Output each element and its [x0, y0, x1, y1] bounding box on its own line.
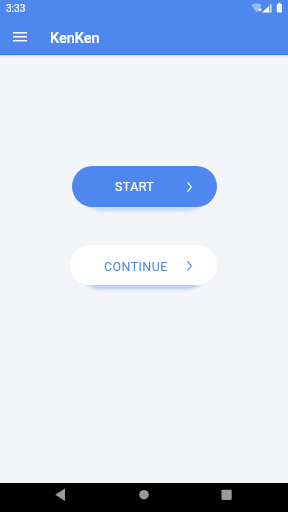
button[interactable]: Open navigation menu	[0, 17, 40, 57]
staticText: 3:33	[6, 3, 26, 15]
button[interactable]: START	[72, 166, 217, 207]
staticText: KenKen	[50, 30, 100, 47]
staticText: CONTINUE	[104, 259, 168, 274]
staticText: START	[115, 179, 155, 194]
button[interactable]: CONTINUE	[70, 245, 217, 285]
